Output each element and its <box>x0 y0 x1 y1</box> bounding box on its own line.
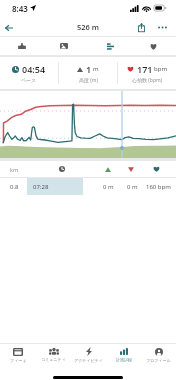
button[interactable]: 1 <box>59 57 117 89</box>
button[interactable]: アクティビティ <box>71 344 106 366</box>
staticText: アクティビティ <box>74 358 103 363</box>
button[interactable]: More options <box>153 18 171 36</box>
staticText: 160 bpm <box>146 183 171 191</box>
staticText: bpm <box>154 65 167 73</box>
staticText: 526 m <box>77 22 100 32</box>
button[interactable]: Back <box>0 19 18 36</box>
button[interactable]: Share <box>132 18 150 36</box>
staticText: 171 <box>137 63 153 75</box>
staticText: m <box>93 65 99 73</box>
staticText: コミュニティ <box>41 357 66 362</box>
staticText: 0 m <box>127 183 138 191</box>
staticText: フィード <box>10 358 27 363</box>
button[interactable]: Splits <box>90 37 130 55</box>
staticText: 0 m <box>103 183 114 191</box>
staticText: 計測記録 <box>116 357 132 362</box>
staticText: 04:54 <box>22 63 46 75</box>
button[interactable]: 171 <box>118 57 176 89</box>
button[interactable]: Like <box>133 37 173 55</box>
staticText: 1 <box>86 63 92 75</box>
staticText: 高度 (m) <box>79 77 98 84</box>
button[interactable]: プロフィール <box>141 344 176 366</box>
staticText: 07:28 <box>33 183 49 191</box>
button[interactable]: フィード <box>0 344 36 366</box>
staticText: プロフィール <box>146 358 171 363</box>
button[interactable]: コミュニティ <box>36 344 71 366</box>
staticText: ペース <box>21 77 37 83</box>
button[interactable]: 04:54 <box>0 57 58 89</box>
staticText: 心拍数 (bpm) <box>132 77 163 84</box>
staticText: km <box>10 166 19 173</box>
staticText: 0.8 <box>10 183 19 191</box>
staticText: 8:43 <box>12 3 28 14</box>
button[interactable]: 0.8 <box>0 178 176 195</box>
button[interactable]: 計測記録 <box>106 344 141 366</box>
button[interactable]: Export <box>2 37 42 55</box>
button[interactable]: Photos <box>44 37 84 55</box>
